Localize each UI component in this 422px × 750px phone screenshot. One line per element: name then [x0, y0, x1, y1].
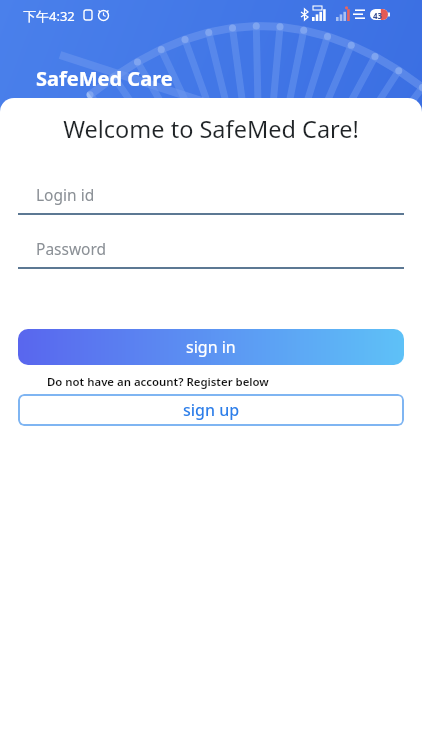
staticText: SafeMed Care — [36, 65, 173, 92]
button[interactable]: Password — [18, 232, 404, 269]
staticText: Welcome to SafeMed Care! — [0, 113, 422, 145]
staticText: sign in — [186, 336, 236, 358]
button[interactable]: sign up — [18, 394, 404, 426]
staticText: 下午4:32 — [23, 7, 75, 25]
staticText: 43 — [373, 10, 383, 21]
staticText: Password — [36, 238, 107, 259]
staticText: sign up — [183, 399, 240, 421]
staticText: Do not have an account? Register below — [47, 374, 269, 390]
button[interactable]: Login id — [18, 178, 404, 215]
button[interactable]: sign in — [18, 329, 404, 365]
staticText: Login id — [36, 184, 95, 205]
